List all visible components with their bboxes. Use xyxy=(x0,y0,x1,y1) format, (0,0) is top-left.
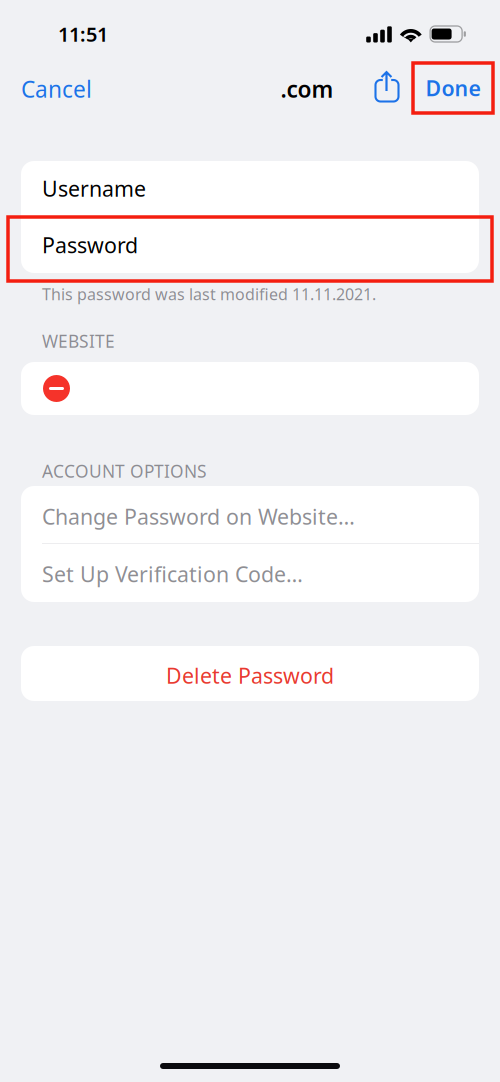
staticText: Delete Password xyxy=(166,661,334,690)
staticText: This password was last modified 11.11.20… xyxy=(42,283,376,305)
staticText: .com xyxy=(280,74,333,104)
staticText: Done xyxy=(425,74,480,102)
staticText: Username xyxy=(42,174,146,203)
button[interactable]: Set Up Verification Code… xyxy=(21,544,479,602)
staticText: Change Password on Website… xyxy=(42,502,355,531)
staticText: WEBSITE xyxy=(42,329,115,352)
button[interactable]: Cancel xyxy=(21,67,101,111)
button[interactable]: Password xyxy=(21,217,479,273)
button[interactable]: Change Password on Website… xyxy=(21,486,479,543)
staticText: Cancel xyxy=(21,74,92,104)
button[interactable]: Share xyxy=(365,64,409,108)
staticText: Password xyxy=(42,231,138,259)
staticText: 11:51 xyxy=(58,21,108,47)
button[interactable]: Username xyxy=(21,161,479,216)
button[interactable]: Done xyxy=(413,63,493,113)
staticText: ACCOUNT OPTIONS xyxy=(42,459,207,482)
button[interactable]: Remove website xyxy=(21,362,92,415)
button[interactable]: Delete Password xyxy=(21,646,479,701)
staticText: Set Up Verification Code… xyxy=(42,560,303,588)
